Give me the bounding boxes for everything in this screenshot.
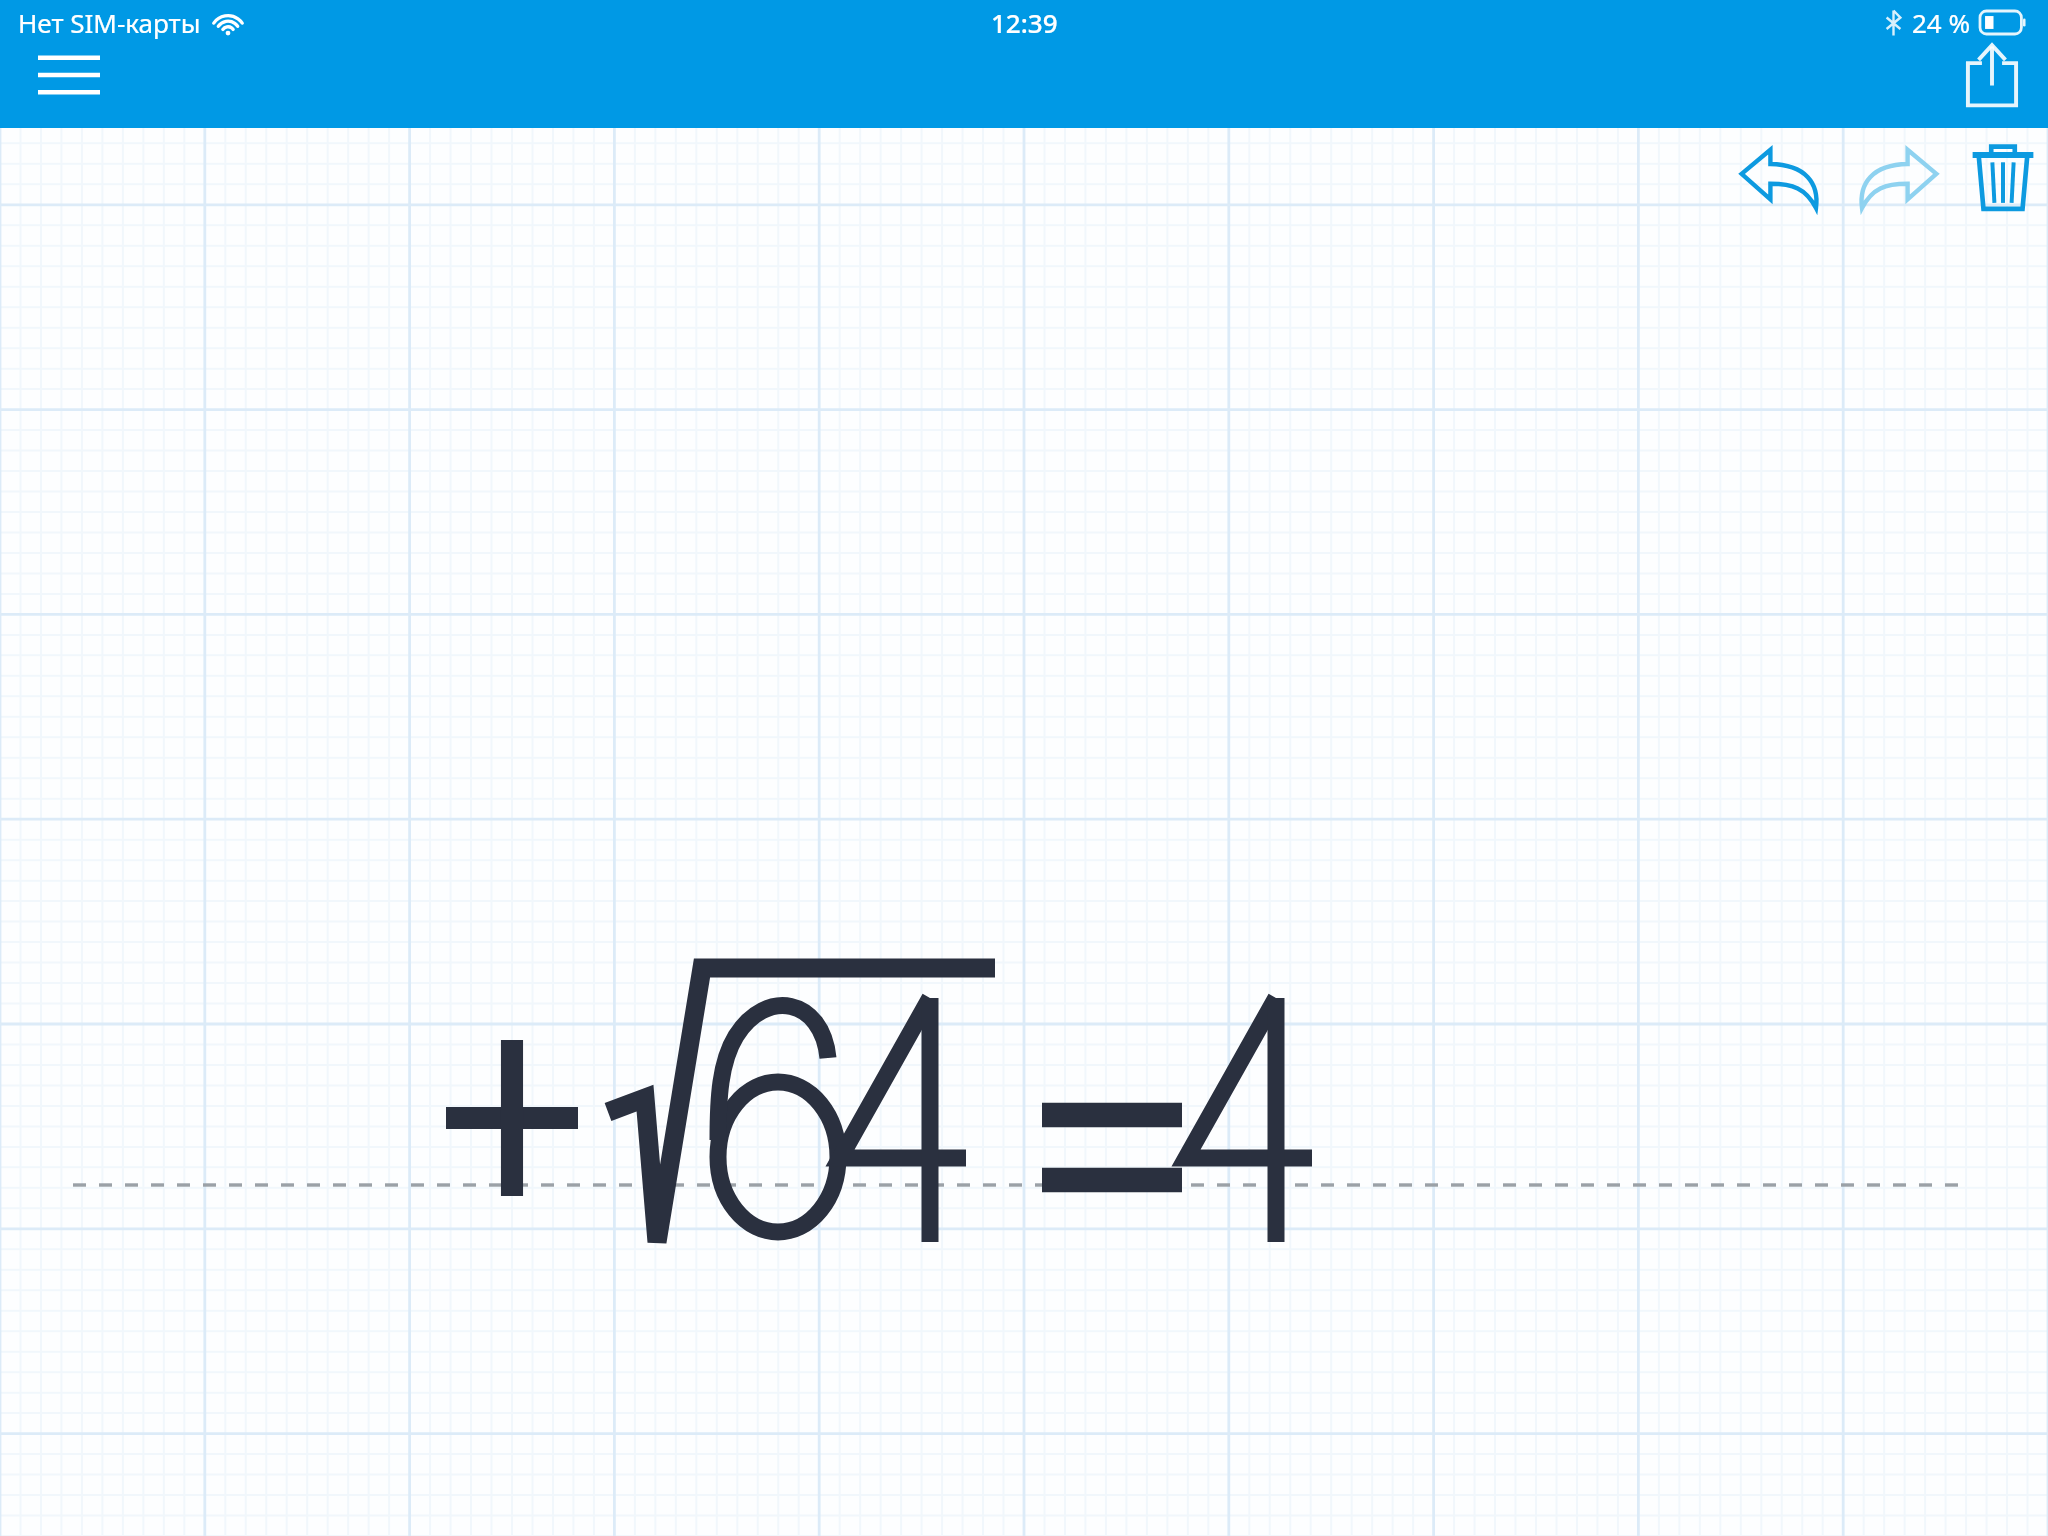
button[interactable]: Delete: [1972, 142, 2034, 212]
staticText: 24 %: [1912, 5, 1971, 40]
button[interactable]: Undo: [1740, 146, 1820, 208]
staticText: 12:39: [991, 5, 1058, 40]
button[interactable]: Share: [1964, 42, 2020, 106]
button[interactable]: Redo: [1858, 146, 1938, 208]
button[interactable]: Menu: [38, 52, 100, 100]
staticText: Нет SIM-карты: [18, 5, 201, 40]
